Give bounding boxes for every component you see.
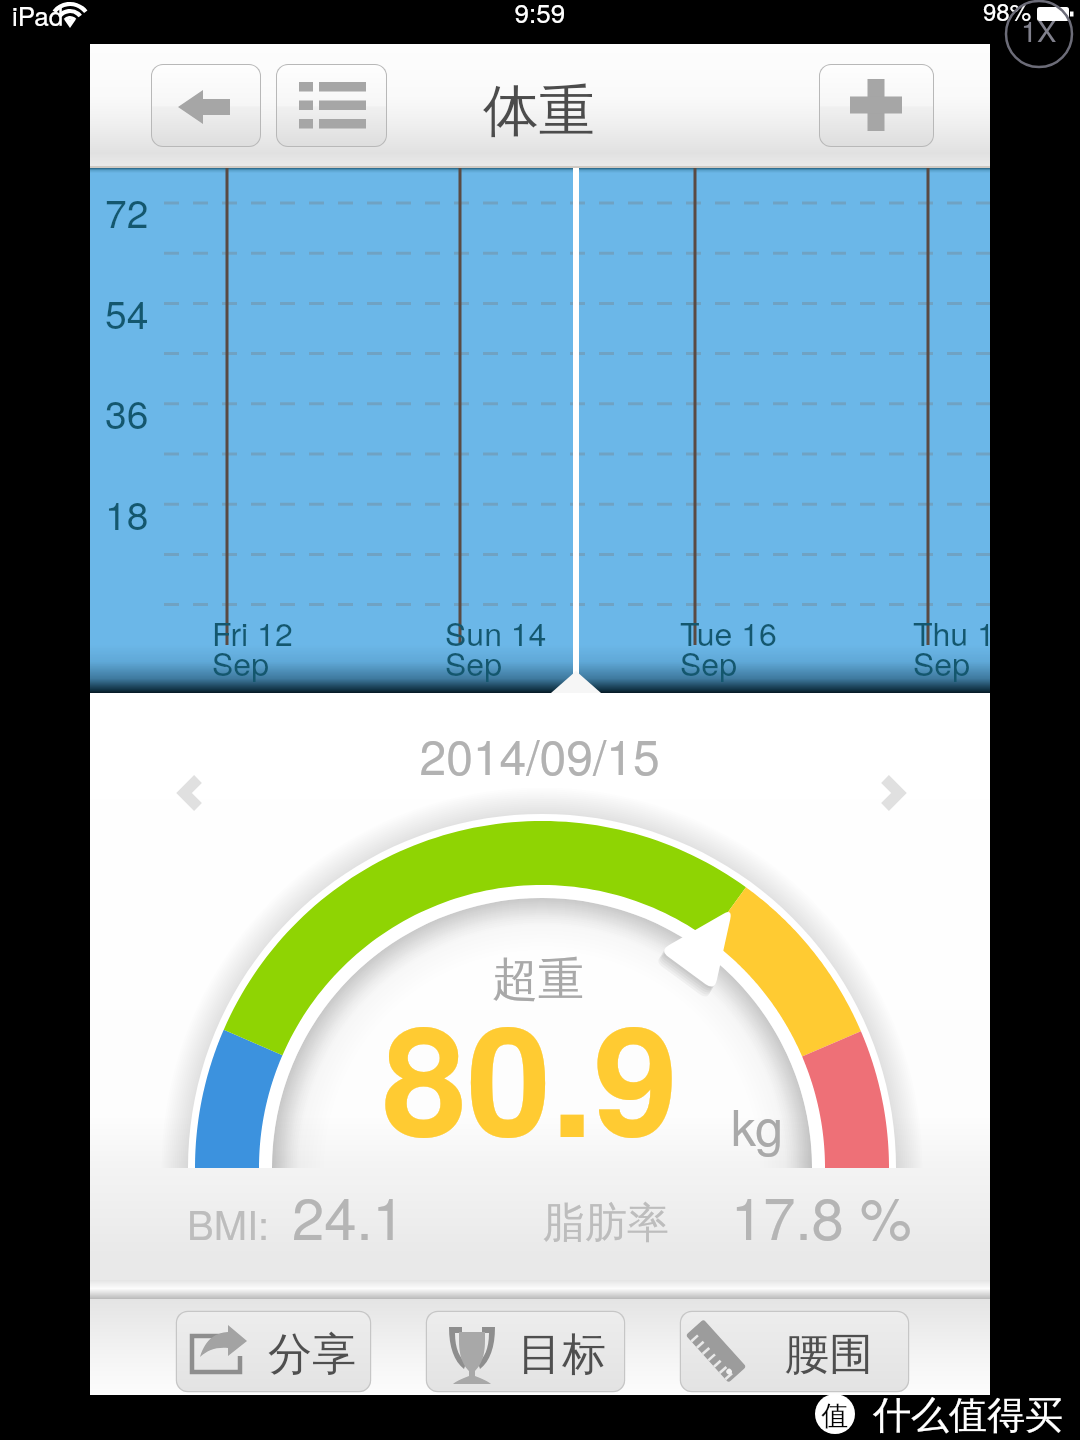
- button[interactable]: List: [277, 65, 386, 146]
- button[interactable]: Add entry: [820, 65, 933, 146]
- button[interactable]: 1X zoom: [1006, 1, 1072, 67]
- button[interactable]: 分享: [177, 1312, 370, 1391]
- button[interactable]: Previous day: [160, 760, 224, 826]
- button[interactable]: 目标: [427, 1312, 624, 1391]
- button[interactable]: 腰围: [681, 1312, 908, 1391]
- button[interactable]: Back: [152, 65, 260, 146]
- button[interactable]: Next day: [858, 760, 922, 826]
